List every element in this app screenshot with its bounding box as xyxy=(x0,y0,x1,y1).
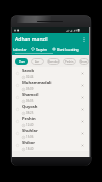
staticText: Dam xyxy=(19,60,25,64)
other: Toggle notification xyxy=(81,144,84,147)
button[interactable]: Prayer xyxy=(12,127,89,139)
staticText: Taqvim xyxy=(36,47,48,51)
button[interactable]: kalendar xyxy=(13,45,27,55)
button[interactable]: Dam xyxy=(15,58,28,65)
staticText: 05:09 xyxy=(26,87,34,91)
button[interactable]: Prayer xyxy=(12,115,89,127)
staticText: Savob xyxy=(22,68,35,74)
button[interactable]: Taqvim xyxy=(31,44,48,54)
button[interactable]: Bomdod xyxy=(47,58,60,65)
staticText: 15:06 xyxy=(26,135,34,139)
button[interactable]: Adhan manzil xyxy=(12,33,89,45)
other: Toggle notification xyxy=(81,132,84,135)
staticText: Shamoil xyxy=(22,92,39,98)
staticText: Shuhlar xyxy=(22,128,38,134)
other: Toggle notification xyxy=(81,108,84,111)
button[interactable]: Prayer xyxy=(12,67,89,79)
other: Prayer xyxy=(16,72,19,75)
staticText: Muhammadali xyxy=(22,80,52,86)
staticText: Bomdod xyxy=(48,60,59,64)
staticText: 02:44 xyxy=(26,75,34,79)
staticText: Shibor xyxy=(22,140,36,146)
button[interactable]: Prayer xyxy=(12,139,89,151)
button[interactable]: Prayer xyxy=(12,91,89,103)
button[interactable]: Peshin xyxy=(63,58,76,65)
other: Prayer xyxy=(16,84,19,87)
other: Prayer xyxy=(16,132,19,135)
staticText: Peshin xyxy=(65,60,74,64)
other: More options xyxy=(83,37,85,42)
staticText: 12:40 xyxy=(26,123,34,127)
other: Toggle notification xyxy=(81,72,84,75)
button[interactable]: Asr xyxy=(31,58,44,65)
button[interactable]: Prayer xyxy=(12,79,89,91)
button[interactable]: Shom xyxy=(79,58,89,65)
other: Prayer xyxy=(16,108,19,111)
staticText: Adhan manzil xyxy=(15,36,48,43)
other: Toggle notification xyxy=(81,96,84,99)
staticText: Asr xyxy=(35,60,40,64)
staticText: 18:40 xyxy=(26,147,34,151)
button[interactable]: Bizni kuzating xyxy=(52,44,79,54)
staticText: Peshin xyxy=(22,116,36,122)
staticText: 08:25 xyxy=(26,111,34,115)
staticText: Bizni kuzating xyxy=(57,47,79,51)
button[interactable]: Prayer xyxy=(12,103,89,115)
staticText: Quyosh xyxy=(22,104,38,110)
other: Prayer xyxy=(16,96,19,99)
staticText: Shom xyxy=(80,60,88,64)
other: Prayer xyxy=(16,144,19,147)
staticText: 06:05 xyxy=(26,99,34,103)
staticText: kalendar xyxy=(13,47,27,51)
other: Toggle notification xyxy=(81,120,84,123)
other: Prayer xyxy=(16,120,19,123)
other: Toggle notification xyxy=(81,84,84,87)
